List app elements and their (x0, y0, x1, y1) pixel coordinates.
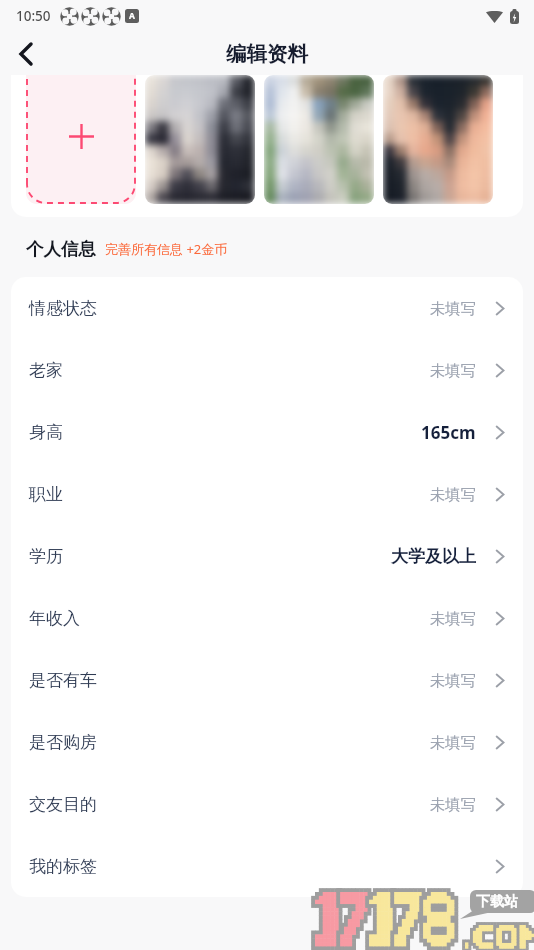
staticText: 未填写 (430, 795, 476, 814)
staticText: 完善所有信息 +2金币 (105, 240, 228, 258)
button[interactable]: 我的标签 (11, 835, 523, 897)
staticText: 未填写 (430, 671, 476, 690)
staticText: 编辑资料 (226, 41, 308, 67)
button[interactable]: Photo (383, 75, 493, 204)
button[interactable]: 身高 (11, 401, 523, 463)
staticText: 学历 (29, 546, 63, 567)
staticText: 年收入 (29, 608, 80, 629)
staticText: 10:50 (16, 7, 51, 25)
staticText: 交友目的 (29, 794, 97, 815)
staticText: 职业 (29, 484, 63, 505)
staticText: 未填写 (430, 299, 476, 318)
staticText: 未填写 (430, 361, 476, 380)
staticText: 情感状态 (29, 298, 97, 319)
staticText: 是否购房 (29, 732, 97, 753)
staticText: 身高 (29, 422, 63, 443)
staticText: 大学及以上 (391, 546, 476, 567)
button[interactable]: 学历 (11, 525, 523, 587)
staticText: 未填写 (430, 485, 476, 504)
button[interactable]: 年收入 (11, 587, 523, 649)
button[interactable]: 老家 (11, 339, 523, 401)
button[interactable]: Back (8, 36, 44, 72)
button[interactable]: 职业 (11, 463, 523, 525)
staticText: 下载站 (476, 893, 518, 911)
button[interactable]: Add photo (26, 75, 136, 204)
staticText: 个人信息 (26, 238, 96, 260)
button[interactable]: 是否有车 (11, 649, 523, 711)
staticText: 165cm (421, 421, 476, 444)
button[interactable]: 情感状态 (11, 277, 523, 339)
staticText: 是否有车 (29, 670, 97, 691)
button[interactable]: 交友目的 (11, 773, 523, 835)
staticText: A (129, 10, 135, 22)
staticText: 老家 (29, 360, 63, 381)
button[interactable]: Photo (145, 75, 255, 204)
staticText: 未填写 (430, 733, 476, 752)
staticText: 未填写 (430, 609, 476, 628)
button[interactable]: 是否购房 (11, 711, 523, 773)
staticText: 我的标签 (29, 856, 97, 877)
button[interactable]: Photo (264, 75, 374, 204)
